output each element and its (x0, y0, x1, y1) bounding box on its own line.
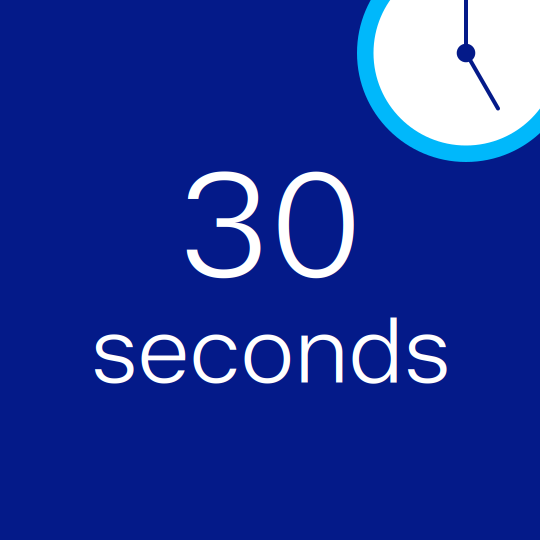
staticText: 30 (178, 138, 363, 312)
staticText: seconds (90, 295, 450, 405)
